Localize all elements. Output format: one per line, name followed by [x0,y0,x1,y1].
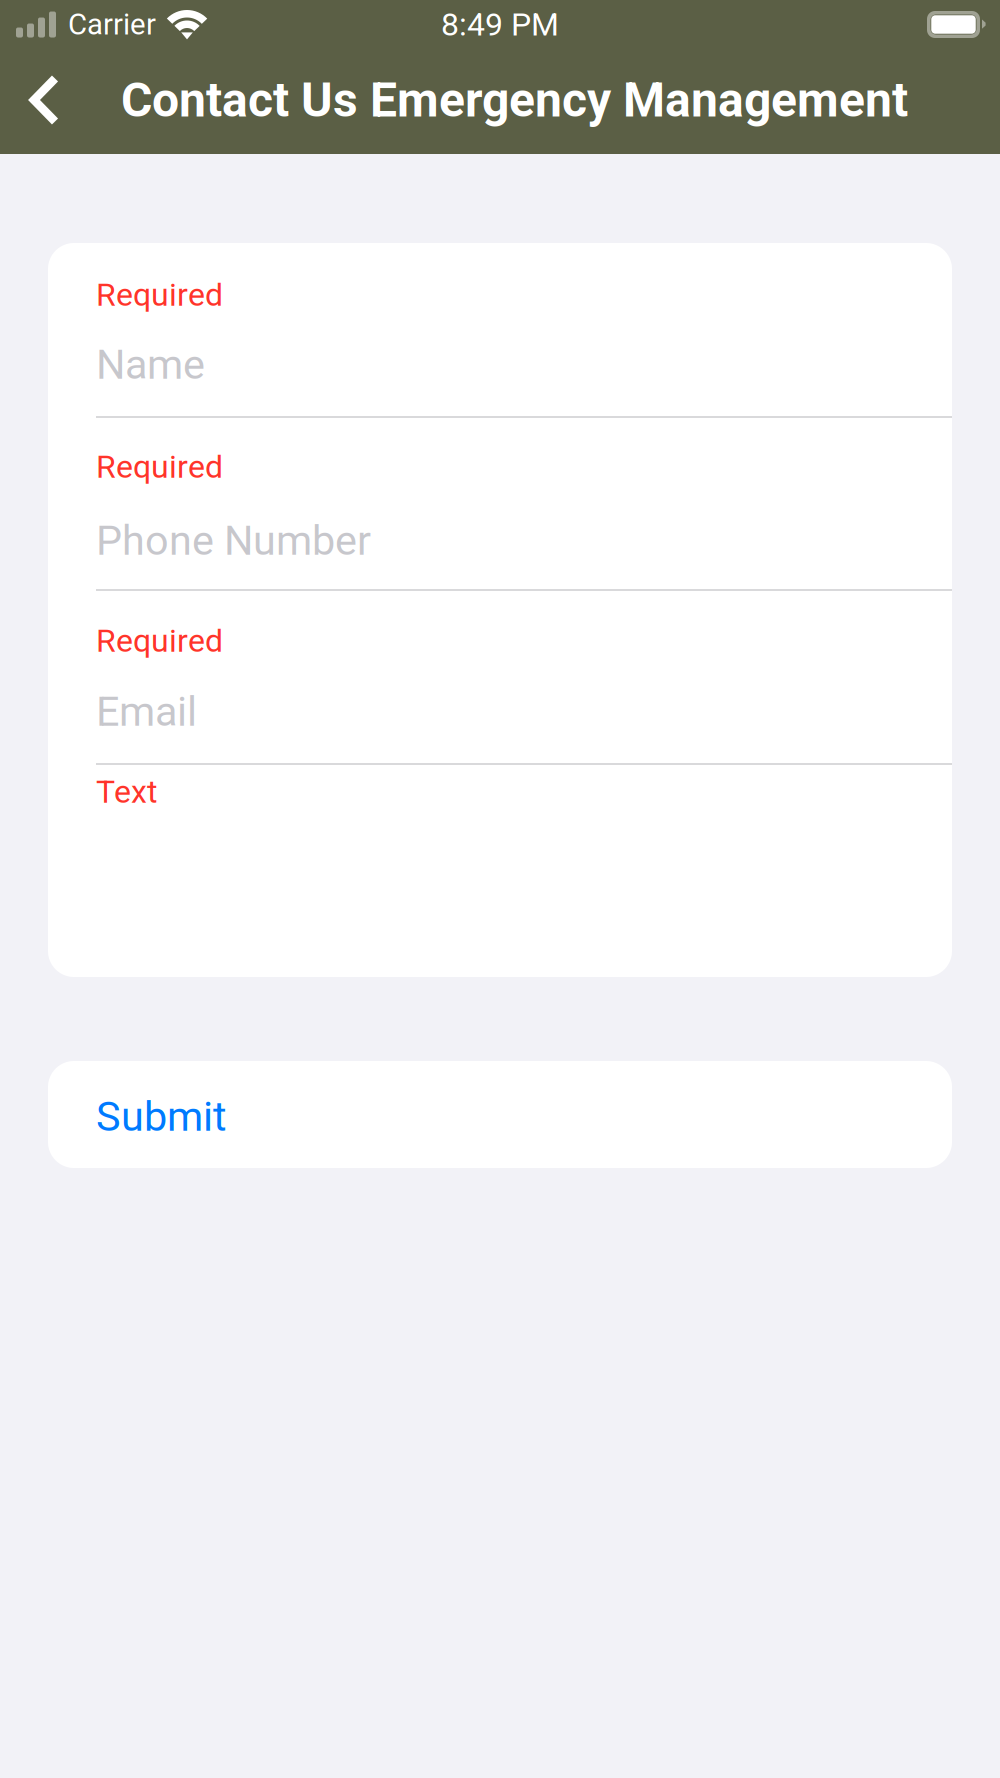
staticText: Name [96,340,205,389]
staticText: Email [96,687,197,736]
staticText: Carrier [68,7,156,42]
button[interactable]: Required [96,243,952,416]
button[interactable]: Submit [48,1061,952,1168]
staticText: 8:49 PM [441,6,559,43]
staticText: Phone Number [96,516,371,565]
button[interactable]: Text [96,765,952,977]
staticText: Submit [96,1092,227,1141]
button[interactable]: Required [96,418,952,589]
staticText: Contact Us Emergency Management [121,72,908,128]
staticText: Required [96,622,223,659]
staticText: Required [96,276,223,313]
button[interactable]: Required [96,591,952,763]
button[interactable]: Back [0,55,75,154]
staticText: Required [96,448,223,485]
staticText: Text [96,773,157,810]
